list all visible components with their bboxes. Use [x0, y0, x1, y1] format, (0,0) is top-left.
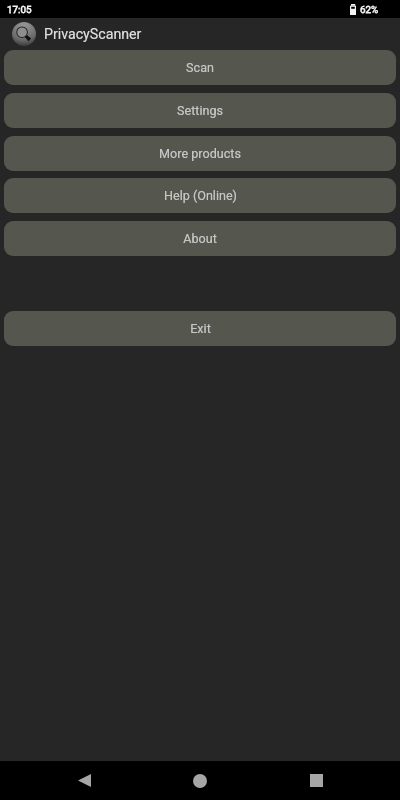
staticText: About	[183, 231, 217, 246]
button[interactable]: About	[4, 221, 396, 256]
button[interactable]: Recent apps	[294, 761, 338, 800]
button[interactable]: Back	[62, 761, 106, 800]
staticText: Scan	[186, 60, 214, 75]
button[interactable]: Exit	[4, 311, 396, 346]
staticText: Settings	[177, 103, 223, 118]
other: App icon	[12, 22, 36, 46]
staticText: Help (Online)	[164, 188, 237, 203]
staticText: 17:05	[7, 4, 32, 15]
button[interactable]: Help (Online)	[4, 178, 396, 213]
staticText: PrivacyScanner	[44, 26, 142, 43]
staticText: More products	[159, 146, 241, 161]
button[interactable]: Home	[178, 761, 222, 800]
button[interactable]: Settings	[4, 93, 396, 128]
staticText: 62%	[360, 4, 379, 15]
button[interactable]: More products	[4, 136, 396, 171]
button[interactable]: Scan	[4, 50, 396, 85]
staticText: Exit	[190, 321, 211, 336]
